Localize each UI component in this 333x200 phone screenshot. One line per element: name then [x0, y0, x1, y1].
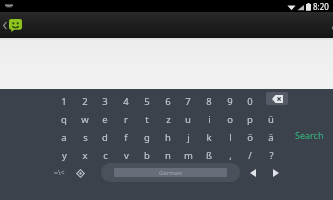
- button[interactable]: g: [138, 129, 156, 145]
- button[interactable]: Space: [101, 163, 240, 182]
- button[interactable]: Backspace: [266, 92, 288, 105]
- staticText: German: [159, 169, 182, 177]
- button[interactable]: 9: [221, 93, 239, 109]
- staticText: 1: [61, 95, 67, 108]
- staticText: 3: [102, 95, 108, 108]
- staticText: 4: [123, 95, 129, 108]
- button[interactable]: 7: [179, 93, 197, 109]
- staticText: 6: [165, 95, 171, 108]
- staticText: ?: [269, 149, 274, 162]
- staticText: 5: [144, 95, 150, 108]
- button[interactable]: j: [179, 129, 197, 145]
- staticText: u: [185, 113, 191, 126]
- staticText: 2: [82, 95, 88, 108]
- staticText: j: [187, 131, 190, 144]
- staticText: n: [165, 149, 171, 162]
- button[interactable]: m: [179, 147, 197, 163]
- button[interactable]: r: [117, 111, 135, 127]
- button[interactable]: 6: [159, 93, 177, 109]
- button[interactable]: 4: [117, 93, 135, 109]
- button[interactable]: f: [117, 129, 135, 145]
- staticText: x: [82, 149, 88, 162]
- staticText: o: [227, 113, 233, 126]
- button[interactable]: x: [76, 147, 94, 163]
- staticText: ü: [268, 113, 274, 126]
- staticText: e: [102, 113, 108, 126]
- button[interactable]: a: [55, 129, 73, 145]
- button[interactable]: =\<: [49, 165, 69, 181]
- button[interactable]: v: [117, 147, 135, 163]
- button[interactable]: y: [55, 147, 73, 163]
- button[interactable]: t: [138, 111, 156, 127]
- button[interactable]: 3: [96, 93, 114, 109]
- staticText: i: [208, 113, 211, 126]
- staticText: w: [81, 113, 89, 126]
- staticText: m: [184, 149, 193, 162]
- staticText: a: [61, 131, 67, 144]
- staticText: 7: [185, 95, 191, 108]
- button[interactable]: Move cursor right: [267, 165, 284, 181]
- button[interactable]: ß: [200, 147, 218, 163]
- staticText: b: [144, 149, 150, 162]
- staticText: s: [83, 131, 88, 144]
- staticText: 9: [227, 95, 233, 108]
- staticText: f: [124, 131, 128, 144]
- staticText: q: [61, 113, 67, 126]
- button[interactable]: s: [76, 129, 94, 145]
- button[interactable]: 1: [55, 93, 73, 109]
- button[interactable]: b: [138, 147, 156, 163]
- button[interactable]: 0: [241, 93, 259, 109]
- button[interactable]: c: [96, 147, 114, 163]
- staticText: t: [145, 113, 149, 126]
- staticText: 8:20: [313, 1, 329, 12]
- button[interactable]: Move cursor left: [244, 165, 261, 181]
- staticText: y: [62, 149, 67, 162]
- button[interactable]: q: [55, 111, 73, 127]
- button[interactable]: p: [241, 111, 259, 127]
- button[interactable]: e: [96, 111, 114, 127]
- staticText: d: [102, 131, 108, 144]
- button[interactable]: w: [76, 111, 94, 127]
- button[interactable]: 2: [76, 93, 94, 109]
- staticText: g: [144, 131, 150, 144]
- staticText: 0: [247, 95, 253, 108]
- button[interactable]: n: [159, 147, 177, 163]
- button[interactable]: ,: [221, 147, 239, 163]
- button[interactable]: i: [200, 111, 218, 127]
- button[interactable]: ?: [262, 147, 280, 163]
- staticText: ß: [206, 149, 212, 162]
- button[interactable]: ü: [262, 111, 280, 127]
- staticText: p: [247, 113, 253, 126]
- staticText: v: [124, 149, 129, 162]
- button[interactable]: Search: [288, 127, 330, 143]
- button[interactable]: Navigate up: [0, 12, 333, 38]
- button[interactable]: z: [159, 111, 177, 127]
- button[interactable]: l: [221, 129, 239, 145]
- button[interactable]: 8: [200, 93, 218, 109]
- button[interactable]: o: [221, 111, 239, 127]
- staticText: Search: [295, 129, 324, 141]
- button[interactable]: ö: [241, 129, 259, 145]
- staticText: ,: [229, 149, 232, 162]
- staticText: ä: [268, 131, 274, 144]
- staticText: 8: [206, 95, 212, 108]
- button[interactable]: Input options: [71, 165, 89, 181]
- staticText: ö: [247, 131, 253, 144]
- staticText: k: [206, 131, 212, 144]
- button[interactable]: 5: [138, 93, 156, 109]
- staticText: h: [165, 131, 171, 144]
- staticText: r: [124, 113, 128, 126]
- staticText: =\<: [54, 168, 65, 178]
- button[interactable]: k: [200, 129, 218, 145]
- staticText: z: [166, 113, 171, 126]
- button[interactable]: /: [241, 147, 259, 163]
- staticText: l: [229, 131, 232, 144]
- button[interactable]: d: [96, 129, 114, 145]
- staticText: /: [248, 149, 252, 162]
- button[interactable]: h: [159, 129, 177, 145]
- button[interactable]: ä: [262, 129, 280, 145]
- button[interactable]: u: [179, 111, 197, 127]
- staticText: c: [103, 149, 108, 162]
